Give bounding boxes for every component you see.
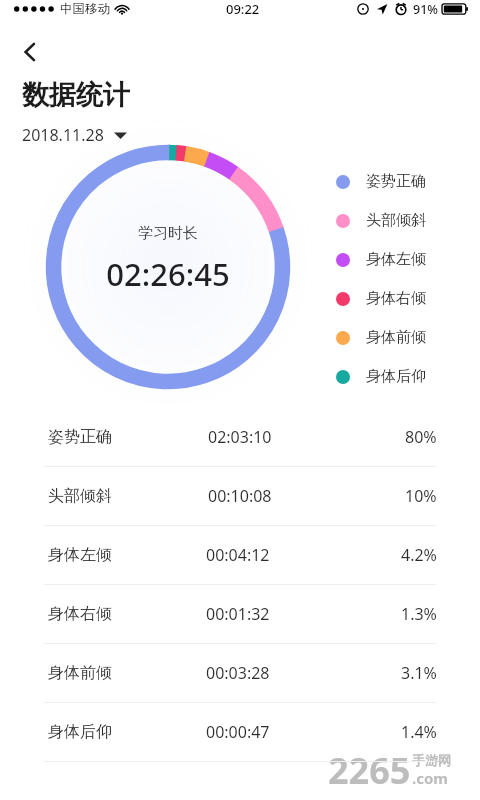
staticText: 身体前倾 [366,328,426,347]
staticText: 00:01:32 [206,603,270,625]
button[interactable]: 身体右倾 [48,585,437,643]
staticText: 身体后仰 [366,367,426,386]
staticText: 1.3% [401,603,437,625]
staticText: 身体右倾 [48,604,112,624]
button[interactable]: 身体左倾 [336,240,480,279]
staticText: 00:03:28 [206,662,270,684]
button[interactable]: 头部倾斜 [48,467,437,525]
staticText: 2018.11.28 [22,124,104,146]
staticText: 头部倾斜 [366,211,426,230]
button[interactable]: 身体左倾 [48,526,437,584]
button[interactable]: 身体后仰 [48,703,437,761]
staticText: 00:00:47 [206,721,270,743]
staticText: 数据统计 [22,78,130,112]
staticText: 姿势正确 [48,427,112,447]
staticText: 91% [413,1,438,18]
staticText: .com [412,768,448,788]
staticText: 09:22 [226,0,260,18]
button[interactable]: Back [8,30,52,74]
staticText: 00:04:12 [206,544,270,566]
button[interactable]: 2018.11.28 [22,124,127,146]
staticText: 02:03:10 [208,426,272,448]
button[interactable]: 身体右倾 [336,279,480,318]
staticText: 学习时长 [138,224,198,243]
button[interactable]: 身体后仰 [336,357,480,396]
staticText: 00:10:08 [208,485,272,507]
staticText: 4.2% [401,544,437,566]
staticText: 身体左倾 [366,250,426,269]
staticText: 3.1% [401,662,437,684]
button[interactable]: 身体前倾 [336,318,480,357]
staticText: 身体右倾 [366,289,426,308]
button[interactable]: 身体前倾 [48,644,437,702]
button[interactable]: 头部倾斜 [336,201,480,240]
staticText: 身体后仰 [48,722,112,742]
button[interactable]: 姿势正确 [48,408,437,466]
staticText: 80% [405,426,437,448]
staticText: 10% [405,485,437,507]
staticText: 中国移动 [60,1,110,17]
staticText: 身体前倾 [48,663,112,683]
staticText: 姿势正确 [366,172,426,191]
staticText: 2265 [328,746,411,795]
staticText: 1.4% [401,721,437,743]
staticText: 02:26:45 [106,253,230,295]
staticText: 手游网 [412,752,451,768]
staticText: 头部倾斜 [48,486,112,506]
staticText: 身体左倾 [48,545,112,565]
button[interactable]: 姿势正确 [336,162,480,201]
